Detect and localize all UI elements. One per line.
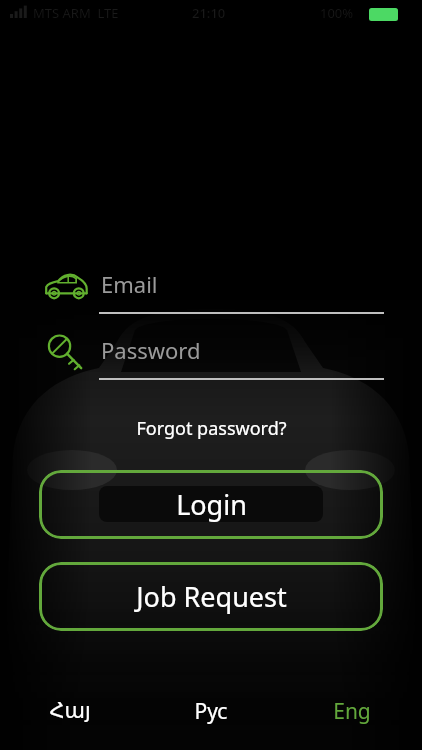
staticText: Email xyxy=(101,269,158,299)
other: Key xyxy=(47,335,85,371)
staticText: 21:10 xyxy=(192,4,226,22)
button[interactable]: Eng xyxy=(281,686,422,736)
button[interactable]: Рус xyxy=(140,686,281,736)
staticText: Eng xyxy=(333,697,371,726)
other: Car xyxy=(44,269,88,301)
button[interactable]: Հայ xyxy=(0,686,140,736)
staticText: Рус xyxy=(194,697,228,726)
button[interactable]: Job Request xyxy=(39,562,383,631)
staticText: Login xyxy=(176,486,247,523)
staticText: Password xyxy=(101,335,201,365)
button[interactable]: Forgot password? xyxy=(0,410,422,446)
button[interactable]: Login xyxy=(39,470,383,539)
staticText: MTS ARM LTE xyxy=(33,4,119,22)
staticText: 100% xyxy=(320,4,354,22)
staticText: Հայ xyxy=(49,699,91,723)
staticText: Job Request xyxy=(136,578,287,615)
staticText: Forgot password? xyxy=(136,416,287,441)
